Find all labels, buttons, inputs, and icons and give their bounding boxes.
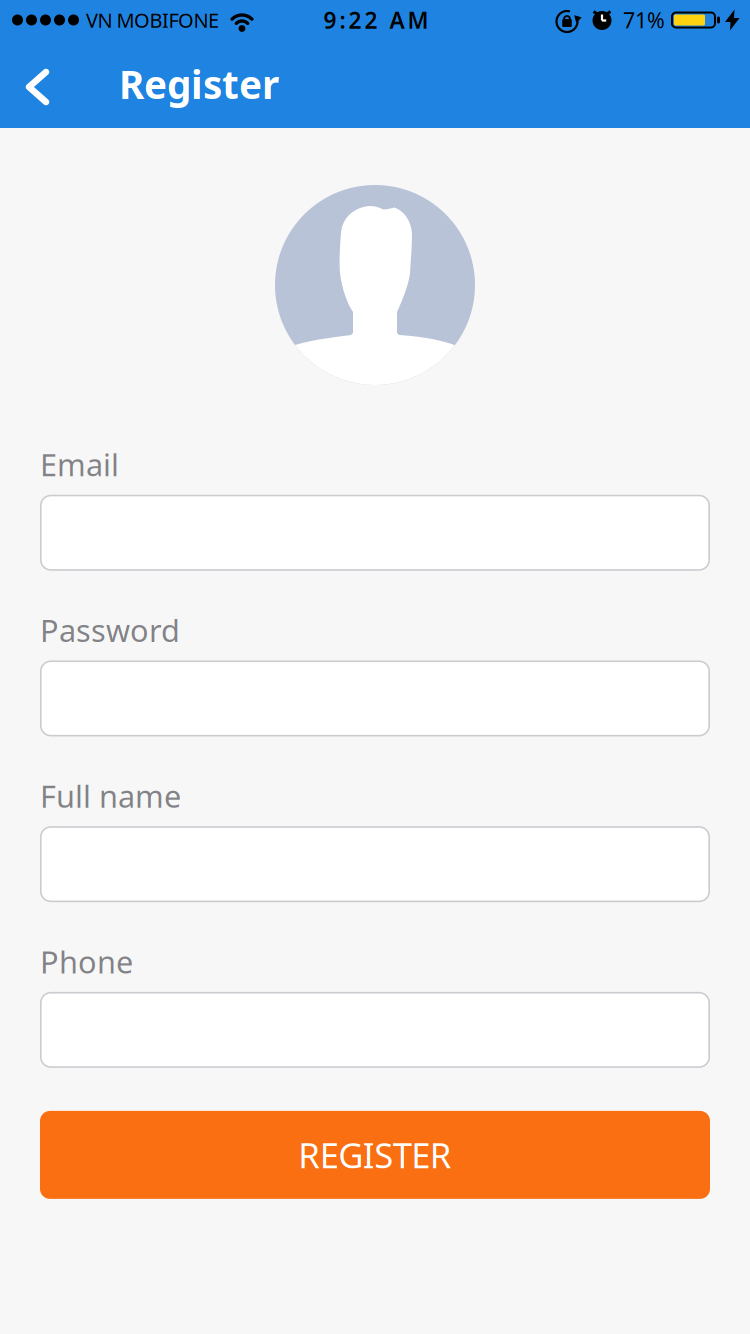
staticText: Email — [40, 444, 119, 485]
button[interactable]: Full name text field — [40, 826, 710, 902]
staticText: REGISTER — [298, 1132, 452, 1178]
button[interactable]: Back — [0, 40, 49, 128]
button[interactable]: REGISTER — [40, 1111, 710, 1199]
staticText: Full name — [40, 775, 181, 816]
button[interactable]: Phone text field — [40, 992, 710, 1068]
button[interactable]: Password text field — [40, 660, 710, 736]
staticText: Register — [119, 58, 279, 110]
staticText: 9:22 AM — [323, 5, 428, 35]
staticText: VN MOBIFONE — [86, 7, 219, 33]
button[interactable]: Email text field — [40, 495, 710, 571]
staticText: Phone — [40, 941, 133, 982]
staticText: Password — [40, 610, 180, 650]
staticText: 71% — [623, 6, 665, 34]
